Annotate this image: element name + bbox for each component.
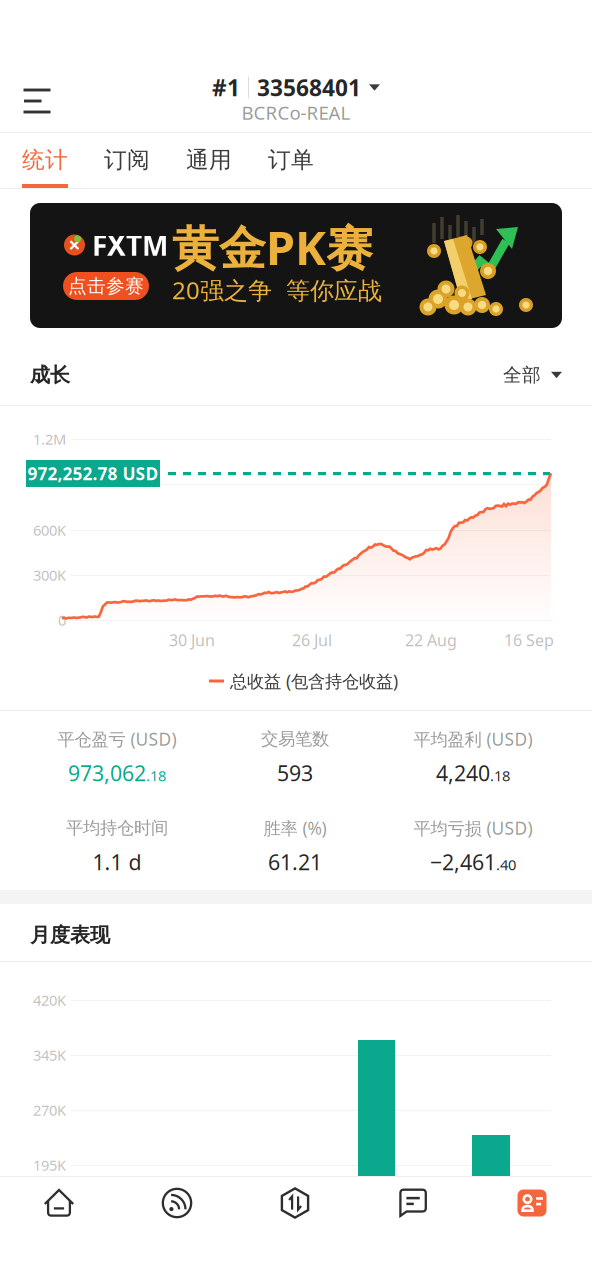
staticText: 300K [33,565,66,585]
button[interactable]: 胜率 (%) [206,816,384,878]
staticText: 交易笔数 [261,728,329,750]
staticText: 平均盈利 (USD) [413,727,532,750]
button[interactable]: Home [0,1177,118,1229]
button[interactable]: 平均持仓时间 [28,816,206,878]
staticText: 33568401 [257,72,361,102]
button[interactable]: 平均亏损 (USD) [384,816,562,878]
staticText: 195K [33,1155,66,1175]
staticText: #1 [212,72,240,102]
staticText: 22 Aug [405,629,457,651]
staticText: 平均亏损 (USD) [413,816,532,839]
staticText: 全部 [503,363,541,386]
staticText: 统计 [22,146,68,174]
staticText: 973,062 [68,759,146,787]
staticText: 270K [33,1100,66,1120]
button[interactable]: 平均盈利 (USD) [384,727,562,789]
staticText: 订单 [268,146,314,174]
button[interactable]: Trade [236,1177,354,1229]
staticText: 20强之争 等你应战 [172,274,382,306]
button[interactable]: Signals [118,1177,236,1229]
staticText: 胜率 (%) [263,816,326,839]
staticText: 972,252.78 USD [27,462,158,485]
button[interactable]: Menu [0,70,74,132]
staticText: 平均持仓时间 [66,817,168,839]
staticText: 61.21 [268,848,322,876]
staticText: 平仓盈亏 (USD) [57,727,176,750]
staticText: 593 [277,759,313,787]
staticText: 月度表现 [30,923,110,947]
staticText: 4,240 [436,759,490,787]
staticText: FXTM [92,226,168,264]
staticText: 通用 [186,146,232,174]
staticText: 点击参赛 [68,274,144,297]
staticText: BCRCo-REAL [241,100,350,125]
staticText: .40 [496,855,516,874]
staticText: 订阅 [104,146,150,174]
staticText: 16 Sep [504,629,554,651]
staticText: 26 Jul [292,629,332,651]
button[interactable]: 统计 [14,133,76,189]
staticText: 420K [33,990,66,1010]
button[interactable]: 通用 [178,133,240,189]
staticText: .18 [146,766,166,785]
button[interactable]: Profile [472,1177,592,1229]
staticText: .18 [490,766,510,785]
staticText: 1.1 d [92,848,141,876]
button[interactable]: 全部 [470,358,562,392]
button[interactable]: 订阅 [96,133,158,189]
staticText: 600K [33,520,66,540]
staticText: 总收益 (包含持仓收益) [230,669,398,692]
button[interactable]: 订单 [260,133,322,189]
staticText: 30 Jun [169,629,215,651]
staticText: 345K [33,1045,66,1065]
button[interactable]: 交易笔数 [206,727,384,789]
staticText: 1.2M [33,429,66,449]
staticText: 0 [58,610,66,630]
staticText: −2,461 [430,848,496,876]
staticText: 成长 [30,363,70,387]
button[interactable]: Messages [354,1177,472,1229]
button[interactable]: 平仓盈亏 (USD) [28,727,206,789]
button[interactable]: FXTM [30,203,562,328]
button[interactable]: #1 [146,73,446,123]
staticText: 黄金PK赛 [172,216,373,278]
